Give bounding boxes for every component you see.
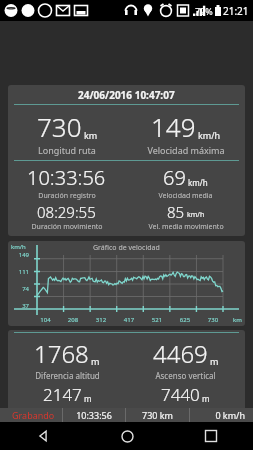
- staticText: 730: [37, 109, 82, 144]
- staticText: 111: [13, 268, 29, 276]
- staticText: 2147: [43, 383, 82, 406]
- staticText: 10:33:56: [63, 409, 125, 421]
- staticText: km: [84, 129, 98, 141]
- staticText: 1768: [34, 337, 89, 370]
- staticText: 378: [47, 418, 77, 422]
- staticText: Altitud máxima: [42, 406, 93, 416]
- button[interactable]: Gráfico de velocidad: [8, 241, 245, 326]
- staticText: km: [233, 316, 242, 324]
- staticText: 312: [87, 316, 115, 324]
- staticText: Grabando: [12, 409, 62, 421]
- button[interactable]: Recent apps: [169, 422, 253, 450]
- staticText: 625: [171, 316, 199, 324]
- staticText: km/h: [187, 210, 205, 220]
- staticText: Duración registro: [38, 191, 96, 201]
- staticText: m: [91, 355, 100, 367]
- staticText: Velocidad máxima: [147, 144, 225, 156]
- staticText: 104: [32, 316, 59, 324]
- staticText: Longitud ruta: [38, 144, 96, 156]
- staticText: 417: [115, 316, 143, 324]
- staticText: Duración movimiento: [31, 222, 103, 232]
- staticText: 24/06/2016 10:47:07: [78, 88, 175, 102]
- staticText: Velocidad media: [158, 191, 213, 201]
- staticText: 149: [13, 251, 29, 259]
- staticText: 7440: [161, 383, 200, 406]
- staticText: 74: [13, 285, 29, 293]
- staticText: m: [79, 418, 87, 420]
- staticText: m: [84, 393, 92, 404]
- staticText: 208: [59, 316, 87, 324]
- staticText: 21:21: [223, 4, 249, 18]
- staticText: km/h: [188, 177, 208, 188]
- staticText: 149: [151, 109, 196, 144]
- staticText: 37: [13, 302, 29, 310]
- staticText: km/h: [11, 243, 26, 251]
- button[interactable]: Home: [85, 422, 169, 450]
- staticText: 72%: [195, 5, 213, 17]
- button[interactable]: Back: [0, 422, 85, 450]
- staticText: Gráfico de velocidad: [93, 243, 160, 253]
- staticText: 521: [143, 316, 171, 324]
- staticText: m: [210, 355, 219, 367]
- staticText: 85: [167, 202, 185, 222]
- button[interactable]: Grabando: [0, 408, 253, 422]
- staticText: 0 km/h: [190, 409, 245, 421]
- staticText: 730 km: [126, 409, 189, 421]
- staticText: 730: [199, 316, 227, 324]
- staticText: Diferencia altitud: [35, 370, 100, 381]
- staticText: 08:29:55: [37, 202, 96, 222]
- staticText: 4469: [153, 337, 208, 370]
- staticText: Ascenso vertical: [155, 370, 216, 381]
- staticText: km/h: [198, 129, 221, 141]
- button[interactable]: 1768: [8, 330, 245, 422]
- staticText: 10:33:56: [27, 164, 106, 191]
- button[interactable]: 24/06/2016 10:47:07: [8, 85, 245, 236]
- staticText: 69: [163, 164, 186, 191]
- staticText: m: [202, 393, 210, 404]
- staticText: 0.2: [165, 418, 189, 422]
- staticText: Distancia vertical: [158, 406, 214, 416]
- staticText: Vel. media movimiento: [148, 222, 224, 232]
